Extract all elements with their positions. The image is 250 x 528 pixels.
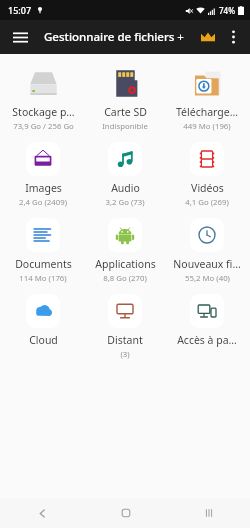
button[interactable]: Applications <box>86 212 164 288</box>
staticText: 3,2 Go (73) <box>105 197 145 208</box>
staticText: Nouveaux fi… <box>173 257 241 271</box>
staticText: 55,2 Mo (40) <box>185 273 230 284</box>
staticText: (3) <box>120 349 130 360</box>
staticText: Cloud <box>29 333 58 347</box>
staticText: Applications <box>95 257 156 271</box>
staticText: 4,1 Go (269) <box>185 197 229 208</box>
button[interactable]: Documents <box>4 212 82 288</box>
staticText: Audio <box>111 181 140 195</box>
staticText: 2,4 Go (2409) <box>19 197 67 208</box>
button[interactable]: Carte SD <box>86 60 164 136</box>
button[interactable]: Nouveaux fi… <box>168 212 246 288</box>
button[interactable]: Audio <box>86 136 164 212</box>
button[interactable]: Distant <box>86 288 164 364</box>
button[interactable]: Vidéos <box>168 136 246 212</box>
staticText: 8,8 Go (270) <box>103 273 147 284</box>
staticText: Accès à pa… <box>177 333 237 347</box>
staticText: Images <box>25 181 62 195</box>
staticText: Carte SD <box>104 105 147 119</box>
button[interactable]: Home <box>84 498 167 528</box>
button[interactable]: Premium <box>196 25 220 49</box>
staticText: 15:07 <box>8 4 32 16</box>
staticText: Indisponible <box>102 121 148 132</box>
button[interactable]: Recent apps <box>167 498 250 528</box>
staticText: Distant <box>107 333 143 347</box>
button[interactable]: Télécharge… <box>168 60 246 136</box>
staticText: Stockage p… <box>12 105 75 119</box>
staticText: Vidéos <box>191 181 224 195</box>
staticText: 114 Mo (176) <box>19 273 67 284</box>
staticText: Télécharge… <box>176 105 238 119</box>
button[interactable]: Stockage p… <box>4 60 82 136</box>
staticText: 74% <box>219 5 235 16</box>
button[interactable]: Cloud <box>4 288 82 351</box>
button[interactable]: Accès à pa… <box>168 288 246 351</box>
button[interactable]: Menu <box>6 23 34 51</box>
staticText: Documents <box>15 257 72 271</box>
staticText: 449 Mo (196) <box>183 121 231 132</box>
staticText: 73,9 Go / 256 Go <box>13 121 74 132</box>
staticText: Gestionnaire de fichiers + <box>44 29 184 45</box>
button[interactable]: More options <box>220 24 246 50</box>
button[interactable]: Back <box>0 498 84 528</box>
button[interactable]: Images <box>4 136 82 212</box>
